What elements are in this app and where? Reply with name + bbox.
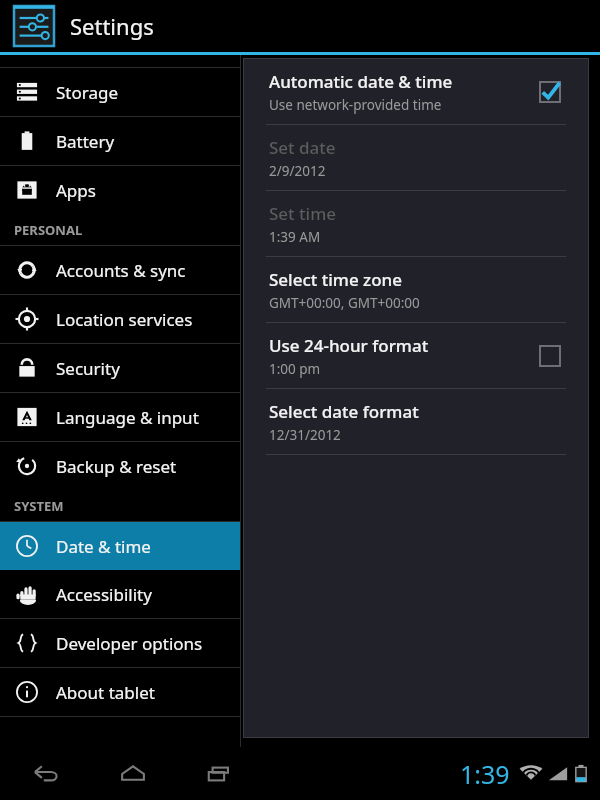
staticText: Accounts & sync — [56, 259, 186, 282]
staticText: SYSTEM — [14, 497, 64, 515]
button[interactable]: Unchecked — [532, 338, 568, 374]
staticText: Language & input — [56, 406, 199, 429]
staticText: 1:39 AM — [269, 228, 321, 246]
button[interactable]: Checked — [532, 74, 568, 110]
staticText: 1:00 pm — [269, 360, 321, 378]
staticText: PERSONAL — [14, 221, 83, 239]
button[interactable]: Accounts & sync — [0, 246, 241, 294]
staticText: Security — [56, 357, 120, 380]
button[interactable]: About tablet — [0, 668, 241, 716]
button[interactable]: Apps — [0, 166, 241, 214]
button[interactable]: Automatic date & time — [244, 59, 588, 124]
staticText: 1:39 — [460, 757, 510, 791]
staticText: Set time — [269, 202, 336, 225]
button[interactable]: Set date — [244, 125, 588, 190]
staticText: 2/9/2012 — [269, 162, 326, 180]
button[interactable]: Set time — [244, 191, 588, 256]
button[interactable]: Select time zone — [244, 257, 588, 322]
button[interactable]: Recent apps — [190, 747, 248, 800]
button[interactable]: Date & time — [0, 522, 241, 570]
staticText: About tablet — [56, 681, 155, 704]
staticText: Date & time — [56, 535, 151, 558]
staticText: Storage — [56, 81, 119, 104]
button[interactable]: Back — [18, 747, 76, 800]
staticText: Select date format — [269, 400, 419, 423]
button[interactable]: Select date format — [244, 389, 588, 454]
staticText: Developer options — [56, 632, 203, 655]
staticText: GMT+00:00, GMT+00:00 — [269, 294, 420, 312]
staticText: Select time zone — [269, 268, 403, 291]
staticText: Apps — [56, 179, 96, 202]
staticText: 12/31/2012 — [269, 426, 341, 444]
staticText: Location services — [56, 308, 193, 331]
staticText: Automatic date & time — [269, 70, 453, 93]
staticText: Battery — [56, 130, 115, 153]
button[interactable]: Language & input — [0, 393, 241, 441]
button[interactable]: Battery — [0, 117, 241, 165]
button[interactable]: Security — [0, 344, 241, 392]
button[interactable]: Accessibility — [0, 570, 241, 618]
button[interactable]: Developer options — [0, 619, 241, 667]
button[interactable]: Storage — [0, 68, 241, 116]
button[interactable]: Home — [104, 747, 162, 800]
staticText: Set date — [269, 136, 336, 159]
staticText: Use network-provided time — [269, 96, 442, 114]
staticText: Settings — [70, 11, 154, 41]
button[interactable]: Location services — [0, 295, 241, 343]
staticText: Backup & reset — [56, 455, 177, 478]
button[interactable]: Use 24-hour format — [244, 323, 588, 388]
button[interactable]: Backup & reset — [0, 442, 241, 490]
staticText: Accessibility — [56, 583, 152, 606]
staticText: Use 24-hour format — [269, 334, 429, 357]
